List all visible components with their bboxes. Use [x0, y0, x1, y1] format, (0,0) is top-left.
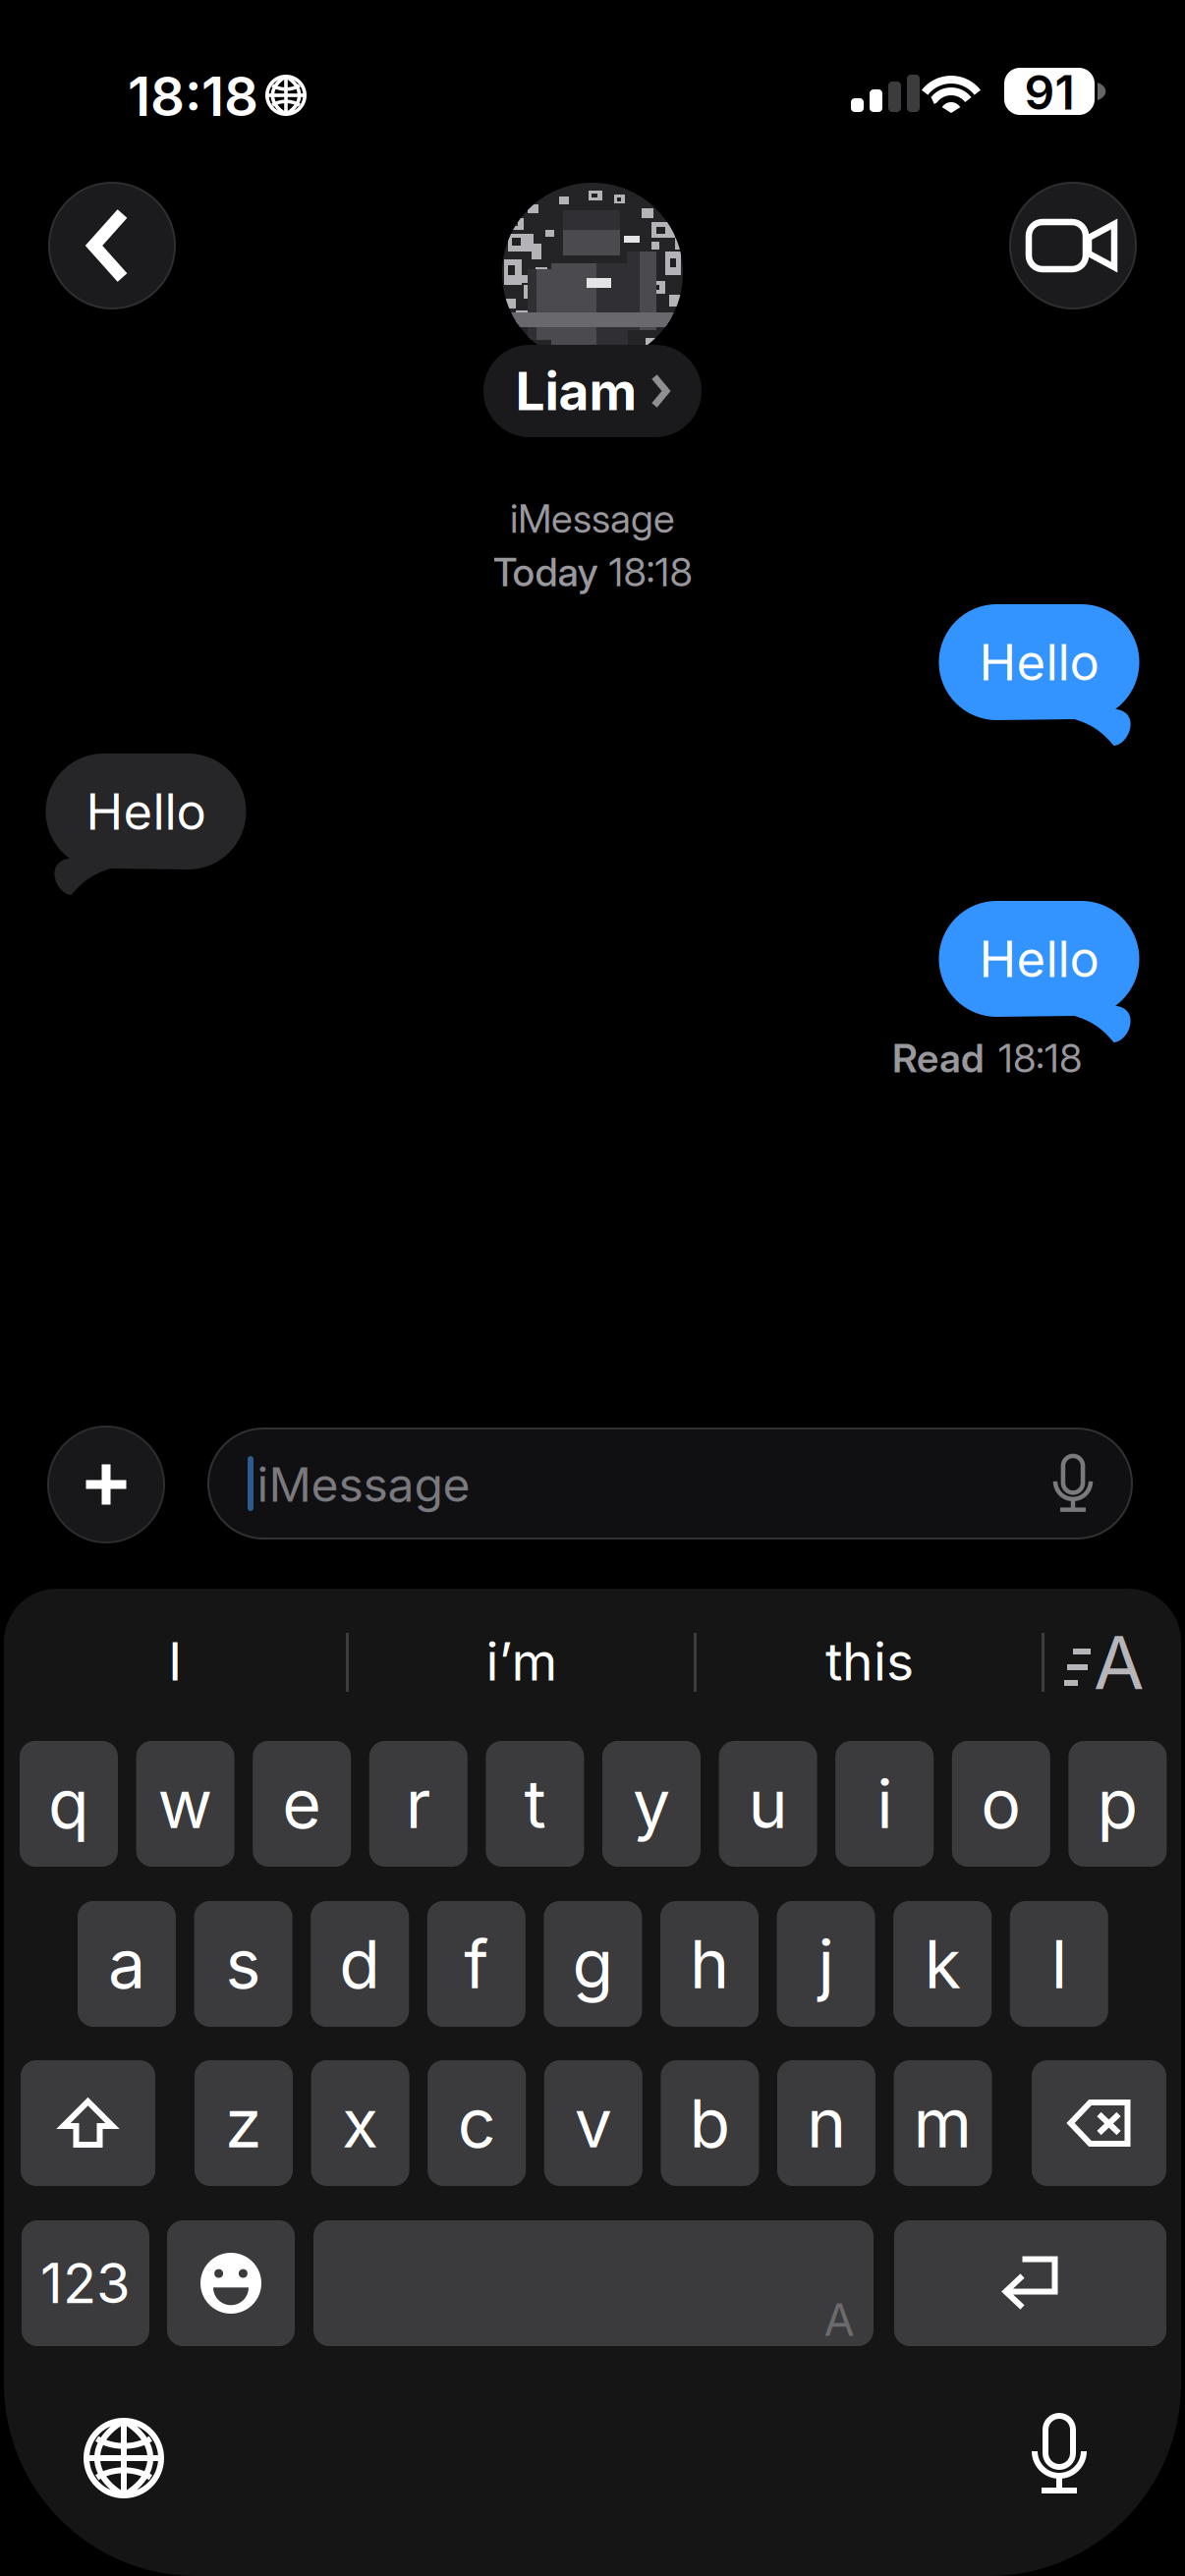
- staticText: r: [406, 1763, 431, 1844]
- staticText: s: [226, 1924, 261, 2004]
- staticText: 18:18: [998, 1034, 1082, 1082]
- staticText: k: [924, 1924, 961, 2004]
- button[interactable]: e: [253, 1741, 351, 1867]
- button[interactable]: r: [369, 1741, 468, 1867]
- button[interactable]: FaceTime: [1010, 183, 1136, 308]
- staticText: t: [524, 1763, 546, 1844]
- button[interactable]: i’m: [348, 1607, 696, 1715]
- button[interactable]: Space: [313, 2220, 874, 2346]
- staticText: i: [877, 1763, 892, 1844]
- button[interactable]: l: [1010, 1901, 1108, 2027]
- staticText: h: [690, 1924, 729, 2004]
- staticText: this: [825, 1630, 914, 1693]
- button[interactable]: g: [544, 1901, 642, 2027]
- button[interactable]: h: [660, 1901, 759, 2027]
- button[interactable]: Next keyboard: [84, 2418, 164, 2498]
- staticText: a: [108, 1924, 145, 2004]
- staticText: I: [168, 1630, 182, 1693]
- button[interactable]: m: [894, 2060, 992, 2186]
- staticText: Hello: [979, 632, 1099, 692]
- button[interactable]: a: [78, 1901, 176, 2027]
- button[interactable]: c: [428, 2060, 526, 2186]
- staticText: i’m: [486, 1630, 558, 1693]
- button[interactable]: 123: [22, 2220, 149, 2346]
- staticText: A: [1094, 1618, 1145, 1707]
- button[interactable]: Return: [894, 2220, 1166, 2346]
- button[interactable]: p: [1068, 1741, 1167, 1867]
- button[interactable]: Message field: [208, 1428, 1132, 1539]
- button[interactable]: this: [696, 1607, 1044, 1715]
- button[interactable]: I: [8, 1607, 342, 1715]
- staticText: q: [48, 1763, 89, 1844]
- button[interactable]: f: [427, 1901, 525, 2027]
- staticText: e: [282, 1763, 322, 1844]
- staticText: 18:18: [128, 64, 258, 129]
- staticText: 123: [40, 2250, 131, 2317]
- button[interactable]: s: [194, 1901, 292, 2027]
- button[interactable]: d: [311, 1901, 409, 2027]
- button[interactable]: u: [719, 1741, 817, 1867]
- staticText: w: [158, 1763, 213, 1844]
- staticText: z: [225, 2083, 262, 2164]
- staticText: x: [342, 2083, 378, 2164]
- staticText: 91: [1024, 64, 1074, 121]
- button[interactable]: i: [835, 1741, 934, 1867]
- button[interactable]: b: [661, 2060, 759, 2186]
- staticText: Liam: [515, 359, 637, 423]
- staticText: d: [339, 1924, 380, 2004]
- button[interactable]: j: [777, 1901, 875, 2027]
- button[interactable]: t: [486, 1741, 584, 1867]
- button[interactable]: k: [893, 1901, 992, 2027]
- staticText: b: [689, 2083, 730, 2164]
- staticText: Read: [892, 1034, 985, 1082]
- button[interactable]: x: [311, 2060, 409, 2186]
- button[interactable]: Liam, contact details: [0, 179, 1185, 442]
- staticText: f: [464, 1924, 489, 2004]
- staticText: y: [633, 1763, 670, 1844]
- staticText: g: [572, 1924, 614, 2004]
- button[interactable]: Add attachment: [48, 1427, 164, 1542]
- staticText: 18:18: [609, 548, 692, 596]
- button[interactable]: Back: [49, 183, 175, 308]
- button[interactable]: Emoji: [167, 2220, 295, 2346]
- button[interactable]: Shift: [21, 2060, 155, 2186]
- staticText: iMessage: [257, 1456, 470, 1513]
- staticText: iMessage: [510, 495, 675, 542]
- staticText: m: [913, 2083, 972, 2164]
- button[interactable]: v: [544, 2060, 642, 2186]
- button[interactable]: Dictate: [1032, 2412, 1087, 2496]
- staticText: Today: [493, 548, 598, 596]
- staticText: v: [575, 2083, 612, 2164]
- button[interactable]: w: [136, 1741, 234, 1867]
- staticText: l: [1051, 1924, 1067, 2004]
- button[interactable]: y: [602, 1741, 701, 1867]
- staticText: n: [807, 2083, 846, 2164]
- button[interactable]: z: [195, 2060, 293, 2186]
- button[interactable]: n: [777, 2060, 875, 2186]
- button[interactable]: o: [952, 1741, 1050, 1867]
- button[interactable]: q: [20, 1741, 118, 1867]
- staticText: u: [748, 1763, 788, 1844]
- staticText: Hello: [86, 781, 206, 842]
- staticText: j: [818, 1924, 834, 2004]
- staticText: Hello: [979, 929, 1099, 989]
- staticText: o: [981, 1763, 1021, 1844]
- staticText: A: [824, 2293, 854, 2347]
- button[interactable]: Text formatting: [1062, 1633, 1147, 1692]
- staticText: c: [458, 2083, 496, 2164]
- button[interactable]: Backspace: [1032, 2060, 1166, 2186]
- staticText: p: [1097, 1763, 1138, 1844]
